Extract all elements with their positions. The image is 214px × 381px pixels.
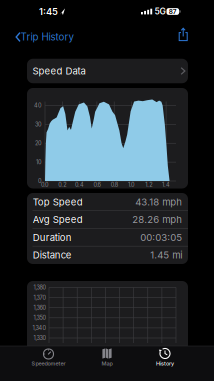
staticText: 87 bbox=[169, 7, 177, 15]
staticText: Speed Data bbox=[32, 65, 85, 77]
staticText: 43.18 mph bbox=[135, 196, 182, 208]
staticText: 1:45 bbox=[39, 6, 58, 17]
staticText: 1,380 bbox=[33, 284, 46, 291]
staticText: 40 bbox=[34, 102, 42, 109]
staticText: Speedometer bbox=[31, 360, 65, 367]
staticText: 20 bbox=[35, 140, 42, 147]
staticText: Avg Speed bbox=[33, 214, 83, 225]
staticText: Map bbox=[101, 360, 112, 367]
staticText: Duration bbox=[33, 232, 72, 243]
staticText: 1.2 bbox=[145, 181, 152, 188]
staticText: 1,340 bbox=[32, 324, 46, 331]
staticText: 1,330 bbox=[33, 335, 46, 341]
staticText: 30 bbox=[35, 121, 42, 128]
staticText: 0.6 bbox=[93, 181, 100, 188]
staticText: Top Speed bbox=[33, 196, 83, 208]
staticText: History bbox=[156, 360, 174, 367]
staticText: Distance bbox=[33, 249, 72, 261]
staticText: 00:03:05 bbox=[140, 232, 182, 243]
staticText: 10 bbox=[36, 159, 42, 165]
staticText: 1,350 bbox=[33, 314, 46, 321]
staticText: 1.0 bbox=[128, 181, 135, 188]
staticText: 1.45 mi bbox=[150, 249, 182, 261]
staticText: 1,370 bbox=[33, 294, 46, 301]
staticText: 0.4 bbox=[75, 181, 84, 188]
staticText: 1,360 bbox=[33, 304, 46, 311]
staticText: 1.4 bbox=[162, 181, 170, 188]
staticText: 28.26 mph bbox=[132, 214, 182, 225]
staticText: 5G bbox=[154, 6, 165, 17]
staticText: 0.8 bbox=[111, 181, 118, 188]
staticText: 0.2 bbox=[58, 181, 66, 188]
staticText: Trip History bbox=[20, 31, 73, 43]
staticText: 0 bbox=[38, 178, 42, 184]
staticText: 0.0 bbox=[41, 181, 49, 188]
